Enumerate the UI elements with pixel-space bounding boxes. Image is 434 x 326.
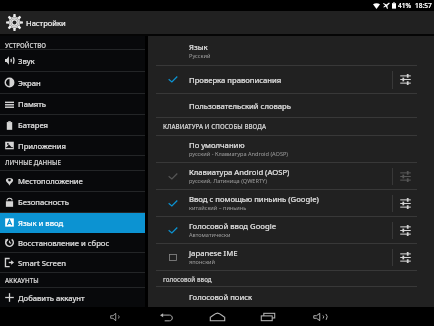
button[interactable]: Settings xyxy=(393,163,418,189)
button[interactable]: Безопасность xyxy=(0,192,145,212)
button[interactable]: Japanese IME xyxy=(148,244,434,270)
staticText: Проверка правописания xyxy=(189,75,282,85)
staticText: КЛАВИАТУРА И СПОСОБЫ ВВОДА xyxy=(163,122,267,130)
button[interactable]: Settings xyxy=(393,217,418,243)
staticText: Голосовой ввод Google xyxy=(189,221,276,231)
staticText: Smart Screen xyxy=(18,258,67,268)
staticText: 41% xyxy=(398,1,412,10)
button[interactable]: Recent apps xyxy=(260,307,276,326)
button[interactable]: Настройки xyxy=(0,11,434,34)
button[interactable]: Добавить аккаунт xyxy=(0,288,145,307)
staticText: Память xyxy=(18,99,47,109)
staticText: китайский – пиньинь xyxy=(189,204,247,212)
button[interactable]: Volume down xyxy=(107,307,123,326)
staticText: Пользовательский словарь xyxy=(189,101,291,111)
button[interactable]: Settings xyxy=(393,66,418,93)
button[interactable]: Голосовой ввод Google xyxy=(148,217,434,243)
button[interactable]: Батарея xyxy=(0,115,145,135)
staticText: УСТРОЙСТВО xyxy=(5,41,47,49)
button[interactable]: Volume up xyxy=(311,307,327,326)
button[interactable]: Клавиатура Android (AOSP) xyxy=(148,163,434,189)
staticText: ЛИЧНЫЕ ДАННЫЕ xyxy=(5,158,61,166)
staticText: Голосовой поиск xyxy=(189,292,253,302)
staticText: японский xyxy=(189,258,216,266)
staticText: Настройки xyxy=(26,18,66,28)
button[interactable]: Язык и ввод xyxy=(0,213,145,232)
staticText: Автоматически xyxy=(189,231,231,239)
button[interactable]: Восстановление и сброс xyxy=(0,233,145,252)
button[interactable]: Язык xyxy=(148,36,434,65)
staticText: Добавить аккаунт xyxy=(18,293,85,303)
button[interactable]: Settings xyxy=(393,244,418,270)
staticText: Язык и ввод xyxy=(18,218,64,228)
button[interactable]: Back xyxy=(158,307,174,326)
staticText: Экран xyxy=(18,78,41,88)
button[interactable]: Home xyxy=(209,307,225,326)
button[interactable]: По умолчанию xyxy=(148,136,434,162)
staticText: русский - Клавиатура Android (AOSP) xyxy=(189,150,289,158)
staticText: голосовой ввод xyxy=(163,275,212,283)
button[interactable]: Местоположение xyxy=(0,171,145,191)
button[interactable]: Память xyxy=(0,94,145,114)
staticText: Безопасность xyxy=(18,197,69,207)
button[interactable]: Ввод с помощью пиньинь (Google) xyxy=(148,190,434,216)
staticText: 18:57 xyxy=(415,1,432,10)
staticText: Восстановление и сброс xyxy=(18,238,110,248)
staticText: АККАУНТЫ xyxy=(5,276,39,284)
staticText: Язык xyxy=(189,42,208,52)
button[interactable]: Проверка правописания xyxy=(148,66,434,93)
staticText: Ввод с помощью пиньинь (Google) xyxy=(189,194,319,204)
button[interactable]: Приложения xyxy=(0,136,145,155)
staticText: Звук xyxy=(18,56,35,66)
button[interactable]: Голосовой поиск xyxy=(148,287,434,307)
staticText: Батарея xyxy=(18,120,49,130)
staticText: Клавиатура Android (AOSP) xyxy=(189,167,290,177)
button[interactable]: Settings xyxy=(393,190,418,216)
button[interactable]: Звук xyxy=(0,50,145,71)
staticText: Приложения xyxy=(18,141,66,151)
button[interactable]: Пользовательский словарь xyxy=(148,94,434,117)
staticText: Местоположение xyxy=(18,176,83,186)
staticText: По умолчанию xyxy=(189,140,245,150)
staticText: русский, Латиница (QWERTY) xyxy=(189,177,267,185)
button[interactable]: Экран xyxy=(0,72,145,93)
staticText: Japanese IME xyxy=(189,248,238,258)
button[interactable]: Smart Screen xyxy=(0,253,145,272)
staticText: Русский xyxy=(189,52,211,60)
